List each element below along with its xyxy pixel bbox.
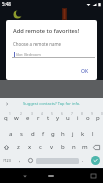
button[interactable]: Enter [91, 156, 100, 165]
button[interactable]: OK [76, 66, 94, 77]
button[interactable]: e [22, 111, 33, 125]
staticText: w [14, 114, 19, 122]
button[interactable]: u [63, 111, 73, 125]
button[interactable]: j [68, 127, 78, 141]
button[interactable]: , [14, 153, 25, 168]
button[interactable]: z [13, 140, 24, 154]
button[interactable]: k [78, 127, 88, 141]
button[interactable]: f [38, 127, 48, 141]
staticText: v [50, 143, 54, 151]
staticText: j [72, 130, 74, 138]
staticText: . [82, 157, 84, 164]
staticText: 5 [51, 112, 53, 116]
button[interactable]: Suggest contacts? Tap for info. [0, 98, 103, 109]
button[interactable]: like: Bedroom [14, 51, 96, 58]
staticText: Suggest contacts? Tap for info. [23, 101, 81, 106]
button[interactable]: v [46, 140, 57, 154]
button[interactable]: n [68, 140, 79, 154]
staticText: Choose a remote name [13, 41, 62, 47]
staticText: q [4, 114, 8, 122]
staticText: p [96, 114, 100, 122]
staticText: i [77, 114, 79, 122]
button[interactable]: Emoji [25, 153, 36, 168]
staticText: 8 [81, 112, 83, 116]
button[interactable]: d [27, 127, 38, 141]
staticText: c [39, 143, 42, 151]
button[interactable]: m [79, 140, 90, 154]
button[interactable]: o [83, 111, 93, 125]
button[interactable]: ?123 [0, 153, 14, 168]
button[interactable]: b [57, 140, 68, 154]
staticText: 4 [41, 112, 43, 116]
staticText: u [66, 114, 70, 122]
staticText: , [19, 157, 21, 164]
staticText: s [20, 130, 23, 138]
button[interactable]: Hide keyboard [19, 169, 30, 183]
button[interactable]: Home [45, 169, 57, 183]
button[interactable]: g [48, 127, 58, 141]
button[interactable]: r [33, 111, 43, 125]
staticText: o [86, 114, 90, 122]
staticText: m [82, 143, 88, 151]
button[interactable]: q [0, 111, 11, 125]
staticText: 1 [9, 112, 11, 116]
staticText: l [92, 130, 94, 138]
button[interactable]: i [73, 111, 83, 125]
staticText: ?123 [3, 158, 11, 163]
button[interactable]: . [79, 153, 87, 168]
button[interactable]: p [93, 111, 103, 125]
staticText: n [72, 143, 76, 151]
staticText: d [31, 130, 35, 138]
staticText: t [47, 114, 50, 122]
staticText: y [56, 114, 60, 122]
staticText: e [26, 114, 30, 122]
button[interactable]: x [24, 140, 35, 154]
staticText: k [81, 130, 85, 138]
staticText: h [61, 130, 65, 138]
button[interactable]: w [11, 111, 22, 125]
staticText: 7 [71, 112, 73, 116]
staticText: like: Bedroom [16, 52, 41, 57]
button[interactable]: Shift [0, 140, 13, 154]
button[interactable]: t [43, 111, 53, 125]
staticText: r [37, 114, 40, 122]
button[interactable]: l [88, 127, 98, 141]
staticText: 5:48 [2, 1, 11, 7]
button[interactable]: s [16, 127, 27, 141]
staticText: Add remote to favorites! [13, 27, 80, 35]
button[interactable]: a [5, 127, 16, 141]
staticText: b [61, 143, 65, 151]
staticText: a [9, 130, 13, 138]
staticText: 9 [91, 112, 93, 116]
staticText: g [51, 130, 55, 138]
button[interactable]: h [58, 127, 68, 141]
button[interactable]: c [35, 140, 46, 154]
staticText: x [28, 143, 32, 151]
staticText: OK [81, 68, 89, 75]
button[interactable]: Backspace [90, 140, 103, 154]
staticText: 2 [20, 112, 22, 116]
button[interactable]: y [53, 111, 63, 125]
staticText: 6 [61, 112, 63, 116]
staticText: 3 [31, 112, 33, 116]
staticText: 0 [101, 112, 103, 116]
staticText: z [17, 143, 20, 151]
staticText: f [42, 130, 45, 138]
button[interactable]: Recents [88, 169, 99, 183]
